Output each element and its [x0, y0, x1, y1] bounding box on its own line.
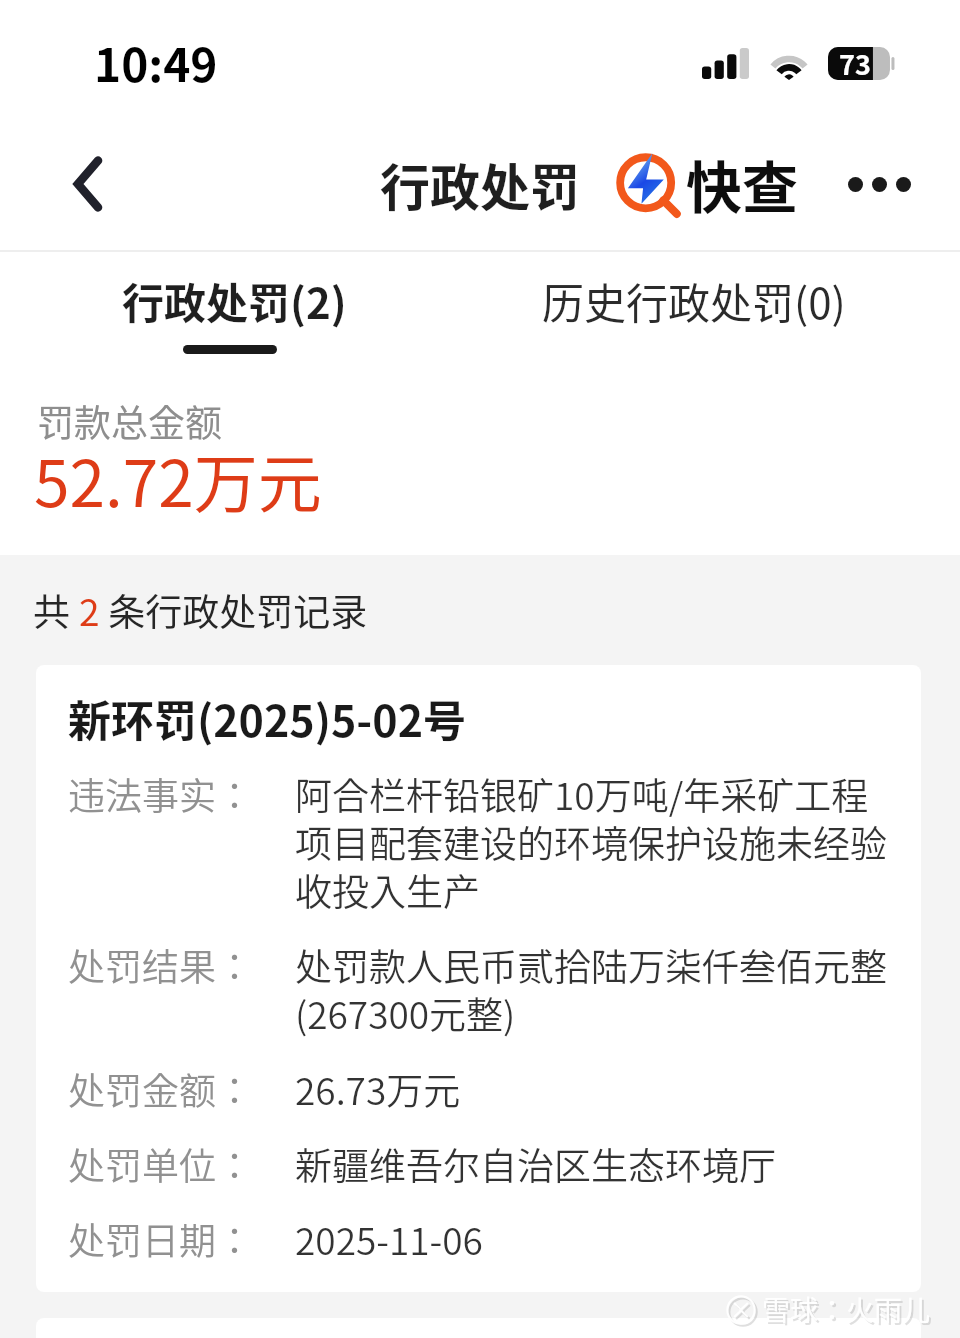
staticText: 雪球：火雨儿 [764, 1293, 933, 1331]
staticText: 2 [79, 586, 100, 636]
button[interactable]: 行政处罚(2) [122, 274, 347, 331]
staticText: 罚款总金额 [37, 397, 222, 447]
staticText: 阿合栏杆铅银矿10万吨/年采矿工程项目配套建设的环境保护设施未经验收投入生产 [295, 772, 891, 916]
button[interactable]: 历史行政处罚(0) [542, 274, 846, 331]
staticText: 行政处罚(2) [122, 274, 347, 331]
staticText: 历史行政处罚(0) [542, 274, 846, 331]
staticText: 26.73万元 [295, 1067, 891, 1115]
staticText: 快查 [686, 147, 798, 223]
staticText: 新环罚(2025)5-02号 [68, 695, 467, 747]
staticText: 52.72万元 [34, 438, 322, 524]
staticText: 处罚金额： [68, 1067, 295, 1115]
staticText: 新疆维吾尔自治区生态环境厅 [295, 1142, 891, 1190]
staticText: 10:49 [94, 32, 218, 94]
staticText: 雪球：火雨儿 [762, 1291, 931, 1329]
staticText: 处罚结果： [68, 943, 295, 991]
staticText: 处罚单位： [68, 1142, 295, 1190]
button[interactable]: More options [834, 139, 924, 229]
staticText: 违法事实： [68, 772, 295, 820]
staticText: 行政处罚 [380, 152, 580, 219]
button[interactable] [36, 1318, 921, 1338]
staticText: 处罚日期： [68, 1217, 295, 1265]
staticText: 73 [839, 46, 871, 79]
staticText: 处罚款人民币贰拾陆万柒仟叁佰元整(267300元整) [295, 943, 891, 1039]
staticText: 2025-11-06 [295, 1217, 891, 1265]
button[interactable]: 新环罚(2025)5-02号 [36, 665, 921, 1292]
button[interactable]: Back [42, 138, 134, 230]
staticText: 条行政处罚记录 [100, 586, 368, 636]
staticText: 共 [33, 586, 79, 636]
